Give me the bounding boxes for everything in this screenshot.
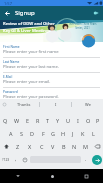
staticText: A [9,130,13,137]
staticText: S [20,130,24,137]
button[interactable]: V [47,140,58,153]
staticText: P [96,117,100,124]
staticText: J [72,130,74,137]
staticText: Please enter your password. [3,94,59,100]
staticText: Please enter your email. [3,79,51,85]
staticText: N [72,143,77,150]
button[interactable]: S [16,127,27,140]
staticText: First Name [3,45,20,49]
button[interactable]: Backspace [91,140,103,153]
staticText: Signup [15,9,35,17]
staticText: C [40,143,44,150]
staticText: Password [3,90,18,94]
button[interactable]: N [69,140,80,153]
button[interactable]: T [43,114,53,127]
button[interactable]: E [22,114,33,127]
button[interactable]: We [72,99,103,110]
staticText: L [92,130,95,137]
staticText: G [51,130,56,137]
staticText: H [61,130,66,137]
staticText: F [42,130,45,137]
button[interactable]: Home [35,169,69,183]
staticText: I [55,102,57,107]
staticText: D [30,130,35,137]
button[interactable]: Emoji [20,153,29,166]
button[interactable]: More suggestions [0,99,9,110]
button[interactable]: Enter [92,155,102,165]
button[interactable]: O [83,114,93,127]
button[interactable]: F [38,127,48,140]
staticText: Review of DDW and Other [3,21,55,27]
staticText: T [46,117,50,124]
button[interactable]: A [5,127,16,140]
staticText: W [14,117,20,124]
staticText: U [66,117,71,124]
button[interactable]: G [48,127,58,140]
staticText: V [51,143,55,150]
staticText: Q [3,117,8,124]
button[interactable]: U [63,114,73,127]
staticText: R [36,117,40,124]
button[interactable]: M [80,140,91,153]
staticText: E-Mail [3,75,13,79]
button[interactable]: Back [0,169,35,183]
staticText: Please enter your last name. [3,64,59,70]
staticText: ?123 [2,157,10,162]
button[interactable]: X [24,140,36,153]
button[interactable]: W [11,114,22,127]
button[interactable]: P [93,114,103,127]
button[interactable]: K [78,127,88,140]
button[interactable]: E-Mail [3,75,100,90]
staticText: Thanks [17,102,31,107]
button[interactable]: I [73,114,83,127]
button[interactable]: Last Name [3,60,100,75]
button[interactable]: B [58,140,69,153]
staticText: K [81,130,85,137]
button[interactable]: ?123 [0,153,12,166]
button[interactable]: App logo [89,6,103,20]
button[interactable]: Q [0,114,11,127]
staticText: Key GI & Liver Meetings [3,28,51,34]
button[interactable]: Y [53,114,63,127]
button[interactable]: First Name [3,45,100,60]
staticText: O [86,117,91,124]
button[interactable]: I [40,99,71,110]
staticText: M [83,143,88,150]
button[interactable]: Shift [0,140,12,153]
button[interactable]: Recents [69,169,103,183]
button[interactable]: H [58,127,68,140]
button[interactable]: R [33,114,43,127]
staticText: 1:57 [4,1,12,6]
staticText: E [26,117,30,124]
staticText: We [85,102,91,107]
button[interactable]: C [36,140,47,153]
button[interactable]: . [82,153,90,166]
button[interactable]: Password [3,90,100,105]
button[interactable]: Thanks [9,99,39,110]
button[interactable]: J [68,127,78,140]
staticText: Last Name [3,60,20,64]
button[interactable]: Z [12,140,24,153]
staticText: B [62,143,66,150]
staticText: Z [16,143,20,150]
staticText: X [28,143,32,150]
staticText: The Health Three Years Series, 2021 [68,22,97,30]
button[interactable]: D [27,127,38,140]
staticText: I [77,117,79,124]
button[interactable]: , [12,153,20,166]
staticText: . [85,156,87,163]
staticText: , [15,156,17,163]
staticText: Please enter your first name [3,49,59,55]
button[interactable]: L [88,127,98,140]
staticText: Y [56,117,60,124]
button[interactable]: Back [0,6,14,20]
